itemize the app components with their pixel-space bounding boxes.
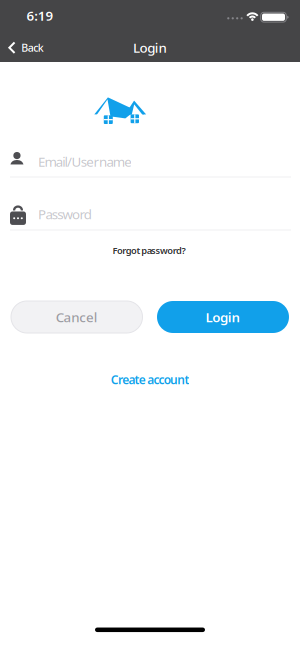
- button[interactable]: Create account: [108, 369, 192, 390]
- staticText: Forgot password?: [112, 244, 185, 256]
- button[interactable]: Back: [2, 36, 48, 60]
- staticText: Password: [38, 205, 92, 223]
- staticText: Back: [21, 41, 44, 55]
- staticText: 6:19: [26, 7, 53, 24]
- staticText: Login: [205, 308, 241, 326]
- button[interactable]: Login: [157, 301, 289, 333]
- button[interactable]: Cancel: [11, 301, 142, 333]
- staticText: Cancel: [56, 308, 98, 326]
- staticText: Email/Username: [38, 153, 132, 170]
- button[interactable]: Password: [5, 200, 295, 231]
- staticText: Login: [133, 39, 166, 56]
- button[interactable]: Email/Username: [5, 147, 295, 178]
- button[interactable]: Forgot password?: [109, 241, 188, 259]
- staticText: Create account: [111, 372, 189, 387]
